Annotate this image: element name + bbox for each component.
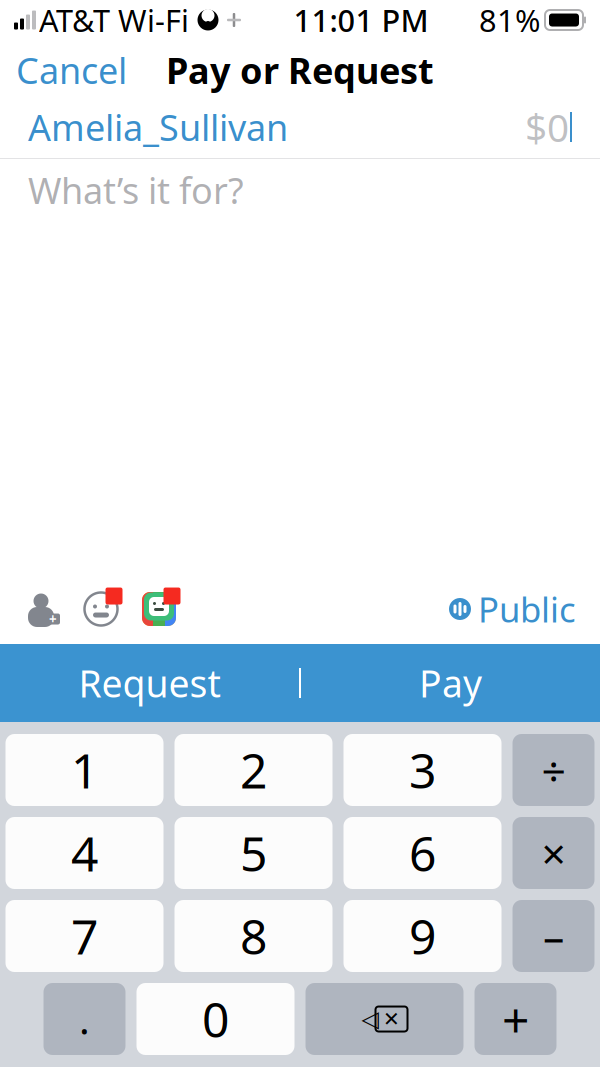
staticText: Public (478, 586, 576, 632)
staticText: 7 (71, 904, 98, 968)
button[interactable]: 9 (343, 900, 501, 972)
button[interactable]: 3 (343, 734, 501, 806)
staticText: 3 (409, 738, 436, 802)
staticText: × (541, 825, 565, 881)
staticText: ◁ (361, 1006, 378, 1032)
staticText: 8 (240, 904, 267, 968)
staticText: + (49, 610, 57, 628)
staticText: AT&T Wi-Fi (39, 0, 189, 40)
staticText: – (543, 908, 564, 964)
button[interactable]: × (512, 817, 594, 889)
button[interactable]: Delete (305, 983, 463, 1055)
button[interactable]: Public (439, 578, 586, 640)
staticText: Pay (419, 658, 482, 708)
button[interactable]: 8 (174, 900, 332, 972)
staticText: Amelia_Sullivan (28, 103, 288, 151)
staticText: $0 (525, 101, 569, 153)
button[interactable]: 5 (174, 817, 332, 889)
button[interactable]: Cancel (0, 38, 143, 102)
staticText: + (502, 987, 529, 1051)
staticText: 0 (202, 987, 229, 1051)
button[interactable]: 6 (343, 817, 501, 889)
staticText: Request (78, 658, 220, 708)
staticText: 4 (71, 821, 98, 885)
staticText: 6 (409, 821, 436, 885)
button[interactable]: + (474, 983, 556, 1055)
button[interactable]: 2 (174, 734, 332, 806)
staticText: What’s it for? (28, 166, 244, 214)
button[interactable]: – (512, 900, 594, 972)
button[interactable]: 7 (5, 900, 163, 972)
button[interactable]: ÷ (512, 734, 594, 806)
staticText: ✕ (383, 1008, 400, 1030)
button[interactable]: Stickers (130, 580, 188, 638)
staticText: 2 (240, 738, 267, 802)
button[interactable]: 0 (136, 983, 294, 1055)
button[interactable]: Emoji keyboard (72, 580, 130, 638)
staticText: 5 (240, 821, 267, 885)
staticText: ÷ (541, 742, 565, 798)
staticText: 81% (479, 0, 540, 40)
button[interactable]: Add person (14, 580, 72, 638)
button[interactable]: Pay (301, 644, 600, 722)
staticText: Pay or Request (166, 46, 434, 94)
staticText: 1 (71, 738, 98, 802)
button[interactable]: 4 (5, 817, 163, 889)
staticText: Cancel (16, 46, 127, 94)
button[interactable]: 1 (5, 734, 163, 806)
button[interactable]: Request (0, 644, 299, 722)
staticText: 9 (409, 904, 436, 968)
staticText: . (79, 992, 90, 1045)
button[interactable]: . (43, 983, 125, 1055)
staticText: 11:01 PM (293, 0, 428, 40)
